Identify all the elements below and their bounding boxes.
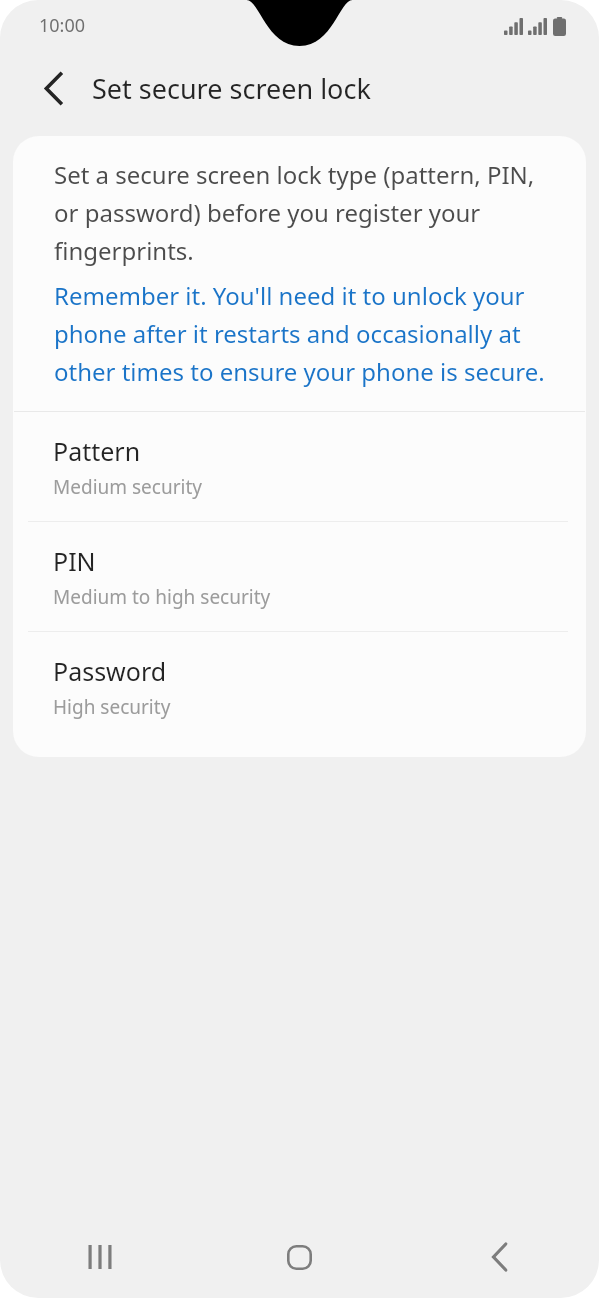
staticText: PIN xyxy=(53,544,96,578)
button[interactable]: Password xyxy=(13,632,586,741)
staticText: Medium to high security xyxy=(53,584,271,610)
staticText: Set a secure screen lock type (pattern, … xyxy=(54,158,556,267)
button[interactable]: PIN xyxy=(13,522,586,631)
staticText: High security xyxy=(53,694,171,720)
button[interactable]: Back xyxy=(399,1216,599,1298)
staticText: Medium security xyxy=(53,474,202,500)
button[interactable]: Pattern xyxy=(13,412,586,521)
staticText: Remember it. You'll need it to unlock yo… xyxy=(54,279,556,388)
staticText: Pattern xyxy=(53,434,141,468)
button[interactable]: Back xyxy=(24,59,82,117)
staticText: Set secure screen lock xyxy=(92,70,371,107)
button[interactable]: Home xyxy=(199,1216,399,1298)
staticText: 10:00 xyxy=(39,13,86,38)
button[interactable]: Recents xyxy=(0,1216,199,1298)
staticText: Password xyxy=(53,654,167,688)
